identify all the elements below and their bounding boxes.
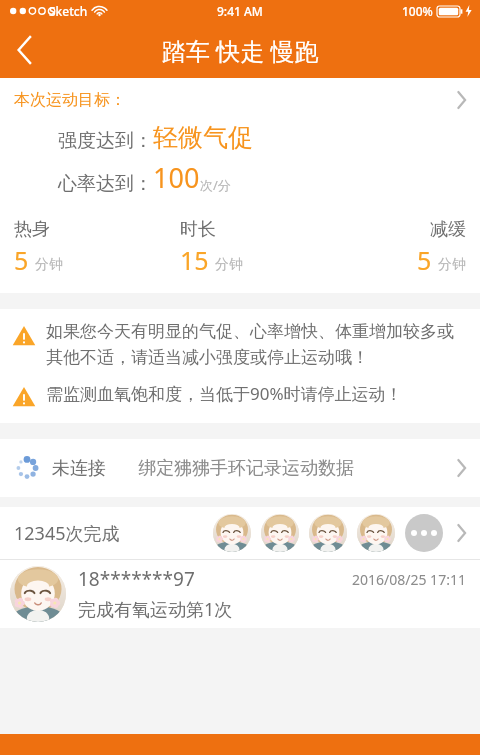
staticText: 完成有氧运动第1次 <box>78 597 233 622</box>
button[interactable]: 未连接 <box>0 439 480 497</box>
staticText: 次/分 <box>200 176 231 194</box>
staticText: 热身 <box>14 218 50 241</box>
staticText: 100 <box>153 159 200 196</box>
staticText: Sketch <box>49 3 88 19</box>
staticText: 未连接 <box>52 457 106 480</box>
staticText: 12345次完成 <box>14 521 120 546</box>
staticText: 100% <box>402 3 433 19</box>
staticText: 2016/08/25 17:11 <box>352 570 466 589</box>
staticText: 5 <box>14 243 29 277</box>
staticText: 分钟 <box>35 256 63 274</box>
staticText: 心率达到： <box>58 172 153 196</box>
button[interactable]: 本次运动目标： <box>0 78 480 122</box>
button[interactable]: 12345次完成 <box>0 507 480 559</box>
staticText: 时长 <box>180 218 216 241</box>
staticText: 5 <box>417 243 432 277</box>
staticText: 绑定狒狒手环记录运动数据 <box>138 457 354 480</box>
staticText: 需监测血氧饱和度，当低于90%时请停止运动！ <box>46 382 403 405</box>
staticText: 减缓 <box>430 218 466 241</box>
staticText: 分钟 <box>438 256 466 274</box>
staticText: 踏车 快走 慢跑 <box>162 34 319 67</box>
button[interactable]: 18*******97 <box>0 560 480 628</box>
staticText: 本次运动目标： <box>14 90 126 110</box>
staticText: 轻微气促 <box>153 122 253 153</box>
staticText: 18*******97 <box>78 566 195 592</box>
button[interactable]: Back <box>0 25 50 75</box>
staticText: 如果您今天有明显的气促、心率增快、体重增加较多或其他不适，请适当减小强度或停止运… <box>46 321 470 368</box>
staticText: 9:41 AM <box>217 3 263 19</box>
staticText: 15 <box>180 243 209 277</box>
staticText: 强度达到： <box>58 129 153 153</box>
staticText: 分钟 <box>215 256 243 274</box>
